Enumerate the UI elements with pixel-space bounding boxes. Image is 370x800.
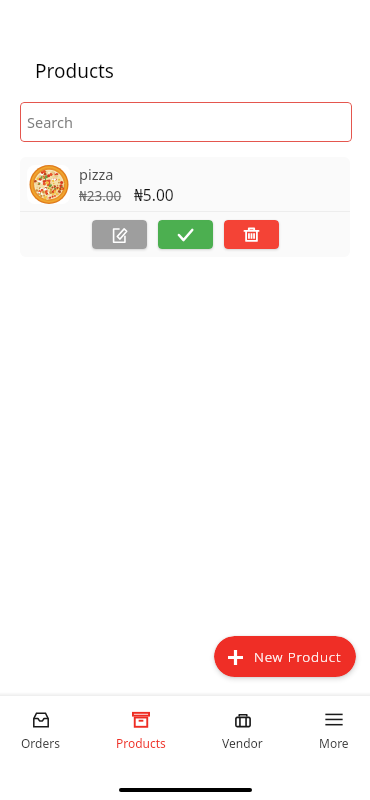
staticText: Orders bbox=[21, 735, 60, 751]
staticText: Vendor bbox=[222, 735, 263, 751]
button[interactable]: Search bbox=[20, 102, 352, 142]
staticText: Products bbox=[116, 735, 166, 751]
button[interactable]: pizza bbox=[20, 157, 350, 211]
button[interactable]: Products bbox=[114, 711, 168, 751]
button[interactable]: Vendor bbox=[220, 711, 265, 751]
staticText: New Product bbox=[254, 648, 342, 666]
staticText: More bbox=[319, 735, 349, 751]
button[interactable]: Edit bbox=[92, 220, 147, 249]
staticText: pizza bbox=[79, 164, 114, 184]
staticText: Search bbox=[27, 112, 73, 132]
button[interactable]: New Product bbox=[214, 636, 356, 677]
button[interactable]: Delete bbox=[224, 220, 279, 249]
button[interactable]: More bbox=[317, 711, 351, 751]
button[interactable]: Approve bbox=[158, 220, 213, 249]
staticText: Products bbox=[35, 58, 114, 84]
button[interactable]: Orders bbox=[19, 711, 62, 751]
staticText: ₦5.00 bbox=[134, 184, 174, 205]
staticText: ₦23.00 bbox=[79, 187, 122, 205]
